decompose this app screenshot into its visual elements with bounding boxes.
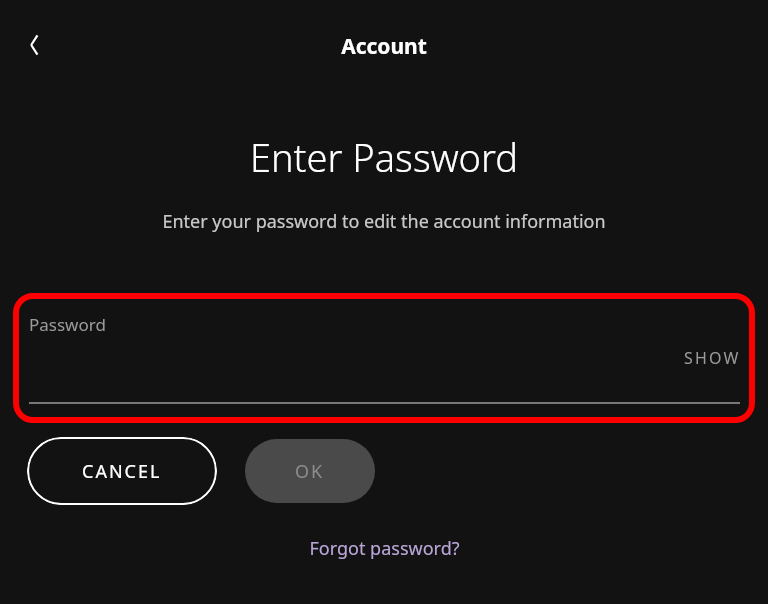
staticText: Password xyxy=(29,313,106,336)
staticText: Enter your password to edit the account … xyxy=(0,209,768,234)
staticText: OK xyxy=(295,459,325,484)
button[interactable]: Back xyxy=(8,17,64,73)
button[interactable]: SHOW xyxy=(680,345,745,371)
staticText: CANCEL xyxy=(82,459,162,484)
staticText: Forgot password? xyxy=(309,536,460,561)
button[interactable]: Forgot password? xyxy=(301,532,468,565)
staticText: Enter Password xyxy=(0,131,768,183)
staticText: Account xyxy=(0,32,768,61)
button[interactable]: OK xyxy=(245,439,375,503)
button[interactable]: Password xyxy=(13,293,755,423)
staticText: SHOW xyxy=(684,347,741,369)
button[interactable]: CANCEL xyxy=(27,437,217,505)
